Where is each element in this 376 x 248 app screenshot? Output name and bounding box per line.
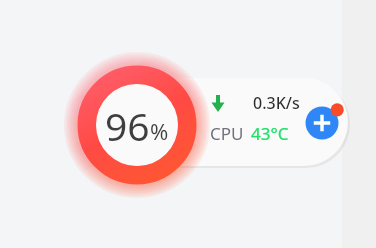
button[interactable]: Add	[304, 101, 346, 143]
staticText: 0.3K/s	[253, 92, 300, 114]
staticText: %	[150, 116, 169, 146]
button[interactable]: 0.3K/s	[118, 78, 348, 166]
staticText: 43°C	[251, 122, 289, 145]
button[interactable]: 96	[74, 54, 200, 196]
staticText: CPU	[210, 122, 244, 145]
staticText: 96	[105, 99, 150, 152]
